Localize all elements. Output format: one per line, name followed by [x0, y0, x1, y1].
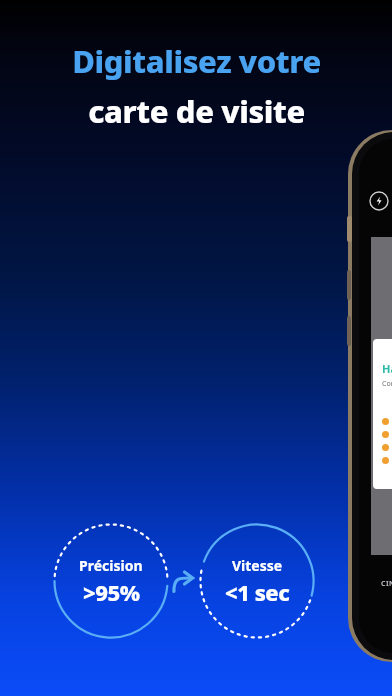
- staticText: CINEM: [381, 579, 392, 589]
- staticText: Vitesse: [232, 556, 283, 575]
- staticText: Digitalisez votre: [72, 40, 321, 82]
- staticText: carte de visite: [88, 90, 305, 132]
- staticText: Har: [382, 361, 392, 376]
- staticText: >95%: [83, 577, 140, 607]
- button[interactable]: Précision: [52, 522, 170, 640]
- button[interactable]: Flash: [369, 191, 389, 211]
- button[interactable]: Vitesse: [198, 522, 316, 640]
- staticText: Comm: [382, 379, 392, 389]
- staticText: Précision: [79, 556, 143, 575]
- staticText: <1 sec: [225, 577, 290, 607]
